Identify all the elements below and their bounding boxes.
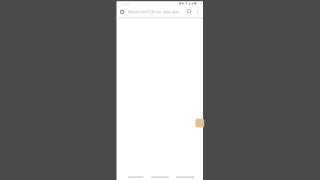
staticText: 8plxp/ss/w/1230 xvr quos ques — [128, 9, 180, 14]
button[interactable]: Site information — [118, 7, 127, 16]
button[interactable]: Reload — [185, 7, 194, 16]
staticText: 11:05 — [121, 1, 130, 7]
button[interactable]: Home — [151, 176, 169, 178]
button[interactable]: Open side panel — [195, 119, 204, 127]
button[interactable]: More options — [194, 7, 201, 16]
button[interactable]: Back — [128, 176, 143, 178]
button[interactable]: Recent apps — [176, 176, 194, 178]
